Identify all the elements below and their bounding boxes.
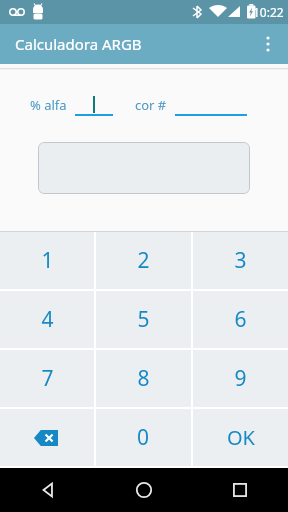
button[interactable]: 6 xyxy=(193,291,288,348)
button[interactable]: 0 xyxy=(96,409,191,466)
button[interactable]: Backspace xyxy=(0,409,94,466)
button[interactable] xyxy=(175,94,247,116)
staticText: 3 xyxy=(234,246,247,275)
staticText: 10:22 xyxy=(253,4,284,20)
staticText: 6 xyxy=(234,305,247,334)
staticText: 0 xyxy=(137,423,150,452)
button[interactable]: 5 xyxy=(96,291,191,348)
staticText: 9 xyxy=(234,364,247,393)
staticText: OK xyxy=(227,424,255,451)
staticText: % alfa xyxy=(30,96,67,114)
staticText: 4 xyxy=(41,305,54,334)
button[interactable]: OK xyxy=(193,409,288,466)
button[interactable]: 7 xyxy=(0,350,94,407)
button[interactable] xyxy=(75,94,113,116)
button[interactable]: Back xyxy=(0,468,96,512)
button[interactable]: 8 xyxy=(96,350,191,407)
button[interactable]: 2 xyxy=(96,232,191,289)
staticText: 7 xyxy=(41,364,54,393)
staticText: Calculadora ARGB xyxy=(15,34,142,54)
button[interactable]: 9 xyxy=(193,350,288,407)
staticText: 8 xyxy=(137,364,150,393)
staticText: 2 xyxy=(137,246,150,275)
button[interactable]: 4 xyxy=(0,291,94,348)
button[interactable]: 3 xyxy=(193,232,288,289)
staticText: 5 xyxy=(137,305,150,334)
staticText: cor # xyxy=(135,96,167,114)
button[interactable]: Home xyxy=(96,468,192,512)
button[interactable]: More options xyxy=(248,24,288,64)
staticText: 1 xyxy=(41,246,54,275)
button[interactable] xyxy=(38,142,250,194)
button[interactable]: 1 xyxy=(0,232,94,289)
button[interactable]: Recent apps xyxy=(192,468,288,512)
